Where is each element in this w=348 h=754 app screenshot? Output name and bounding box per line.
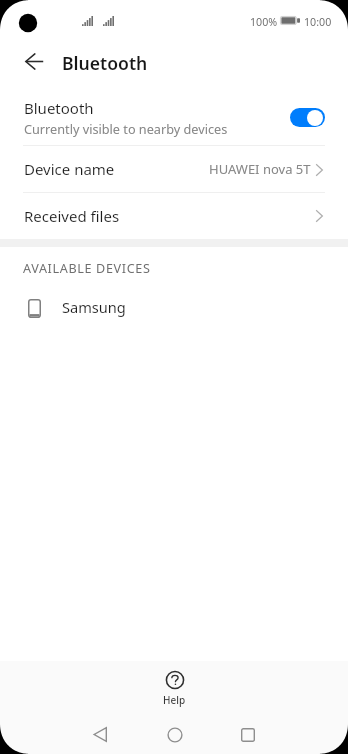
staticText: Currently visible to nearby devices — [24, 120, 228, 137]
staticText: Bluetooth — [24, 98, 94, 118]
staticText: Bluetooth — [62, 51, 148, 75]
button[interactable]: Bluetooth on — [290, 108, 325, 127]
staticText: Received files — [24, 206, 120, 226]
staticText: Device name — [24, 159, 115, 179]
button[interactable]: Back — [77, 712, 122, 754]
button[interactable]: Device name — [0, 145, 348, 192]
button[interactable]: Home — [152, 712, 197, 754]
staticText: HUAWEI nova 5T — [209, 160, 311, 178]
staticText: Samsung — [62, 297, 126, 317]
staticText: 10:00 — [304, 15, 332, 30]
button[interactable]: Samsung — [0, 287, 348, 331]
button[interactable]: Help — [155, 670, 193, 710]
staticText: 100% — [250, 15, 278, 30]
staticText: Help — [163, 693, 186, 707]
button[interactable]: Received files — [0, 192, 348, 239]
button[interactable]: Back — [16, 43, 52, 79]
staticText: AVAILABLE DEVICES — [23, 260, 151, 277]
button[interactable]: Bluetooth — [0, 84, 348, 145]
button[interactable]: Recents — [225, 712, 270, 754]
